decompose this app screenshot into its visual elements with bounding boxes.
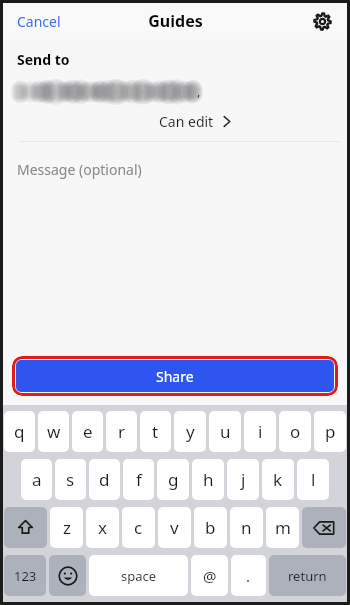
button[interactable]: g (157, 459, 189, 500)
staticText: a (32, 468, 42, 491)
staticText: x (98, 516, 107, 539)
staticText: b (205, 516, 216, 539)
staticText: Can edit (159, 112, 214, 131)
staticText: q (14, 420, 25, 443)
staticText: v (170, 516, 179, 539)
button[interactable]: 123 (4, 555, 46, 596)
button[interactable]: return (269, 555, 346, 596)
button[interactable]: Message (optional) (3, 157, 347, 181)
staticText: p (325, 420, 336, 443)
staticText: m (275, 516, 291, 539)
button[interactable]: c (122, 507, 155, 548)
staticText: g (168, 468, 179, 491)
button[interactable]: p (314, 411, 346, 452)
staticText: u (220, 420, 231, 443)
button[interactable]: q (4, 411, 35, 452)
button[interactable]: space (89, 555, 188, 596)
button[interactable]: y (174, 411, 206, 452)
staticText: . (246, 566, 251, 586)
button[interactable]: Share (16, 360, 334, 392)
button[interactable]: h (192, 459, 224, 500)
button[interactable]: a (21, 459, 52, 500)
button[interactable]: l (297, 459, 329, 500)
staticText: Message (optional) (17, 160, 142, 179)
button[interactable]: d (89, 459, 120, 500)
staticText: s (66, 468, 75, 491)
button[interactable]: e (72, 411, 103, 452)
staticText: l (311, 468, 316, 491)
staticText: , (197, 82, 201, 100)
staticText: h (203, 468, 214, 491)
staticText: z (63, 516, 71, 539)
button[interactable]: k (262, 459, 294, 500)
button[interactable]: t (140, 411, 171, 452)
button[interactable]: u (209, 411, 241, 452)
staticText: k (273, 468, 283, 491)
button[interactable]: w (38, 411, 69, 452)
staticText: Cancel (17, 12, 61, 31)
button[interactable]: n (230, 507, 263, 548)
button[interactable]: Can edit (155, 109, 235, 134)
staticText: space (121, 567, 157, 585)
staticText: w (47, 420, 61, 443)
button[interactable]: f (123, 459, 154, 500)
button[interactable]: b (194, 507, 227, 548)
button[interactable]: . (231, 555, 266, 596)
button[interactable]: Shift (4, 507, 47, 548)
staticText: c (134, 516, 143, 539)
staticText: Share (156, 367, 194, 386)
staticText: j (241, 468, 246, 491)
staticText: 123 (14, 567, 37, 585)
button[interactable]: r (106, 411, 137, 452)
button[interactable]: i (244, 411, 276, 452)
staticText: y (186, 420, 195, 443)
button[interactable]: Cancel (12, 8, 66, 35)
staticText: f (136, 468, 142, 491)
staticText: return (288, 567, 327, 585)
button[interactable]: Emoji (49, 555, 86, 596)
button[interactable]: z (50, 507, 83, 548)
staticText: o (290, 420, 301, 443)
button[interactable]: @ (191, 555, 228, 596)
button[interactable]: m (266, 507, 299, 548)
button[interactable]: s (55, 459, 86, 500)
staticText: r (118, 420, 126, 443)
staticText: Send to (17, 50, 70, 69)
button[interactable]: Settings (308, 7, 336, 35)
staticText: d (99, 468, 110, 491)
button[interactable]: j (227, 459, 259, 500)
staticText: Guides (148, 10, 203, 32)
staticText: n (241, 516, 252, 539)
staticText: e (83, 420, 93, 443)
staticText: t (152, 420, 159, 443)
button[interactable]: x (86, 507, 119, 548)
button[interactable]: o (279, 411, 311, 452)
staticText: i (258, 420, 263, 443)
staticText: @ (203, 566, 217, 586)
button[interactable]: Backspace (302, 507, 346, 548)
button[interactable]: v (158, 507, 191, 548)
